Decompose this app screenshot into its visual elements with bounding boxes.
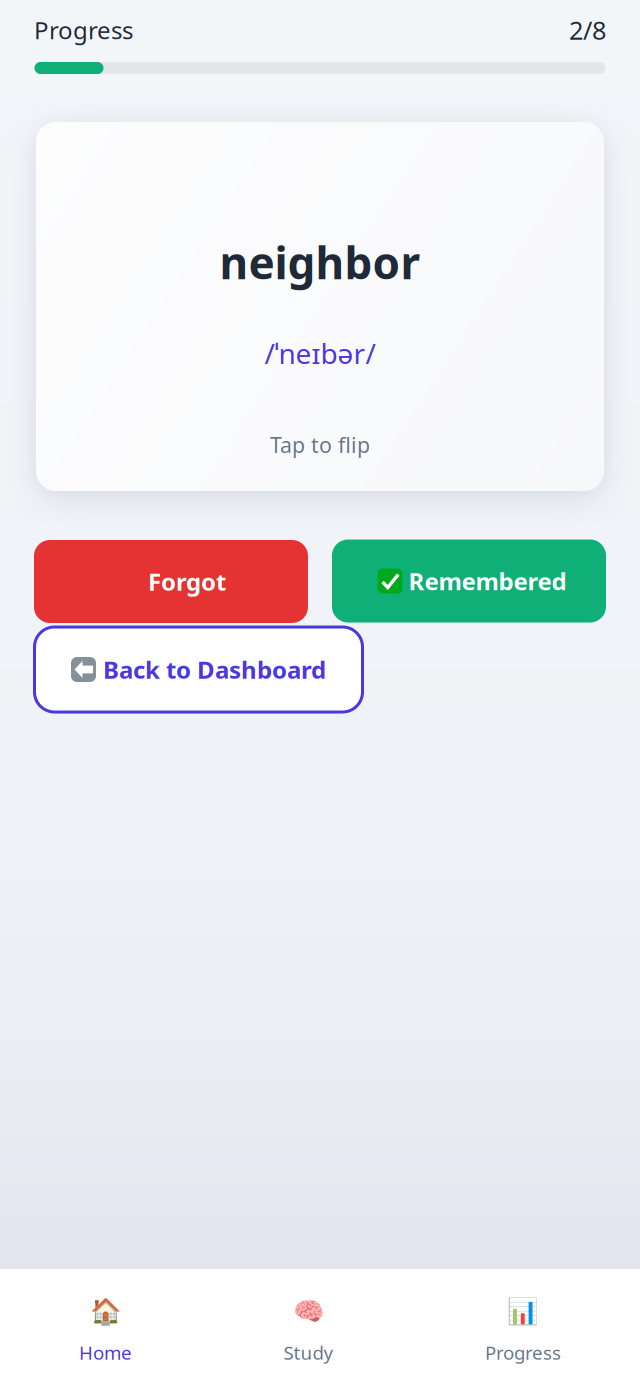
staticText: Study (283, 1340, 333, 1365)
button[interactable]: 🏠 (79, 1297, 132, 1365)
button[interactable]: Back to Dashboard (34, 627, 362, 712)
staticText: Progress (485, 1340, 561, 1365)
staticText: /ˈneɪbər/ (264, 334, 375, 372)
staticText: 📊 (507, 1297, 539, 1326)
staticText: 🏠 (89, 1297, 121, 1326)
staticText: Forgot (148, 566, 226, 597)
staticText: 🧠 (292, 1297, 324, 1326)
staticText: 2/8 (569, 13, 606, 47)
button[interactable]: 📊 (485, 1297, 561, 1365)
staticText: Home (79, 1340, 132, 1365)
staticText: Progress (34, 14, 133, 46)
staticText: Back to Dashboard (103, 654, 326, 685)
button[interactable]: Remembered (332, 539, 606, 622)
button[interactable]: 🧠 (283, 1297, 333, 1365)
staticText: Remembered (408, 565, 566, 597)
staticText: neighbor (219, 233, 420, 291)
button[interactable]: Forgot (34, 539, 308, 623)
staticText: Tap to flip (270, 431, 370, 459)
button[interactable]: neighbor (36, 122, 604, 491)
